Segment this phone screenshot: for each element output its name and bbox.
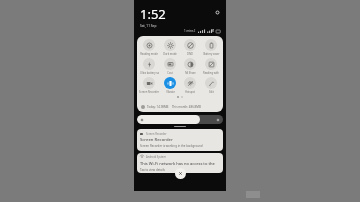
button[interactable]: Dark mode — [160, 39, 180, 56]
staticText: Screen Recorder is working in the backgr… — [140, 144, 203, 148]
button[interactable]: Brightness — [137, 115, 223, 124]
button[interactable]: Android System — [137, 153, 223, 173]
button[interactable]: Ultra battery sa — [139, 58, 159, 75]
button[interactable]: Mi Share — [180, 58, 200, 75]
button[interactable]: Cast — [160, 58, 180, 75]
staticText: 91 — [211, 29, 215, 33]
staticText: Reading with blu — [201, 71, 221, 75]
staticText: Screen Recorder — [139, 90, 159, 94]
staticText: Cast — [167, 71, 173, 75]
button[interactable]: Reading with blu — [201, 58, 221, 75]
button[interactable]: Screen Recorder — [137, 129, 223, 151]
staticText: Edit — [209, 90, 214, 94]
staticText: Android System — [146, 155, 166, 159]
staticText: Dark mode — [163, 52, 177, 56]
button[interactable]: DND — [180, 39, 200, 56]
staticText: Today: 14.98MB — [147, 105, 169, 109]
staticText: Screen Recorder — [146, 132, 167, 136]
button[interactable]: Settings — [214, 9, 221, 16]
button[interactable]: Battery saver — [201, 39, 221, 56]
staticText: 1 mins I — [184, 29, 196, 33]
staticText: Ultra battery sa — [140, 71, 159, 75]
staticText: Sat, 11 Sep — [140, 24, 157, 28]
button[interactable]: Screen Recorder — [139, 77, 159, 94]
staticText: Vibrate — [166, 90, 175, 94]
button[interactable]: Edit — [201, 77, 221, 94]
staticText: Mi Share — [185, 71, 196, 75]
staticText: This month: 486.8MB — [172, 105, 201, 109]
staticText: This Wi-Fi network has no access to the … — [140, 161, 220, 166]
staticText: Tap to view details — [140, 168, 165, 171]
staticText: DND — [187, 52, 193, 56]
staticText: 1:52 — [140, 5, 166, 23]
button[interactable]: Reading mode — [139, 39, 159, 56]
button[interactable]: Vibrate — [160, 77, 180, 94]
staticText: Battery saver — [203, 52, 220, 56]
button[interactable]: Hotspot — [180, 77, 200, 94]
staticText: Reading mode — [140, 52, 158, 56]
button[interactable]: Clear all notifications — [175, 168, 186, 179]
staticText: Hotspot — [185, 90, 195, 94]
staticText: Screen Recorder — [140, 137, 173, 143]
